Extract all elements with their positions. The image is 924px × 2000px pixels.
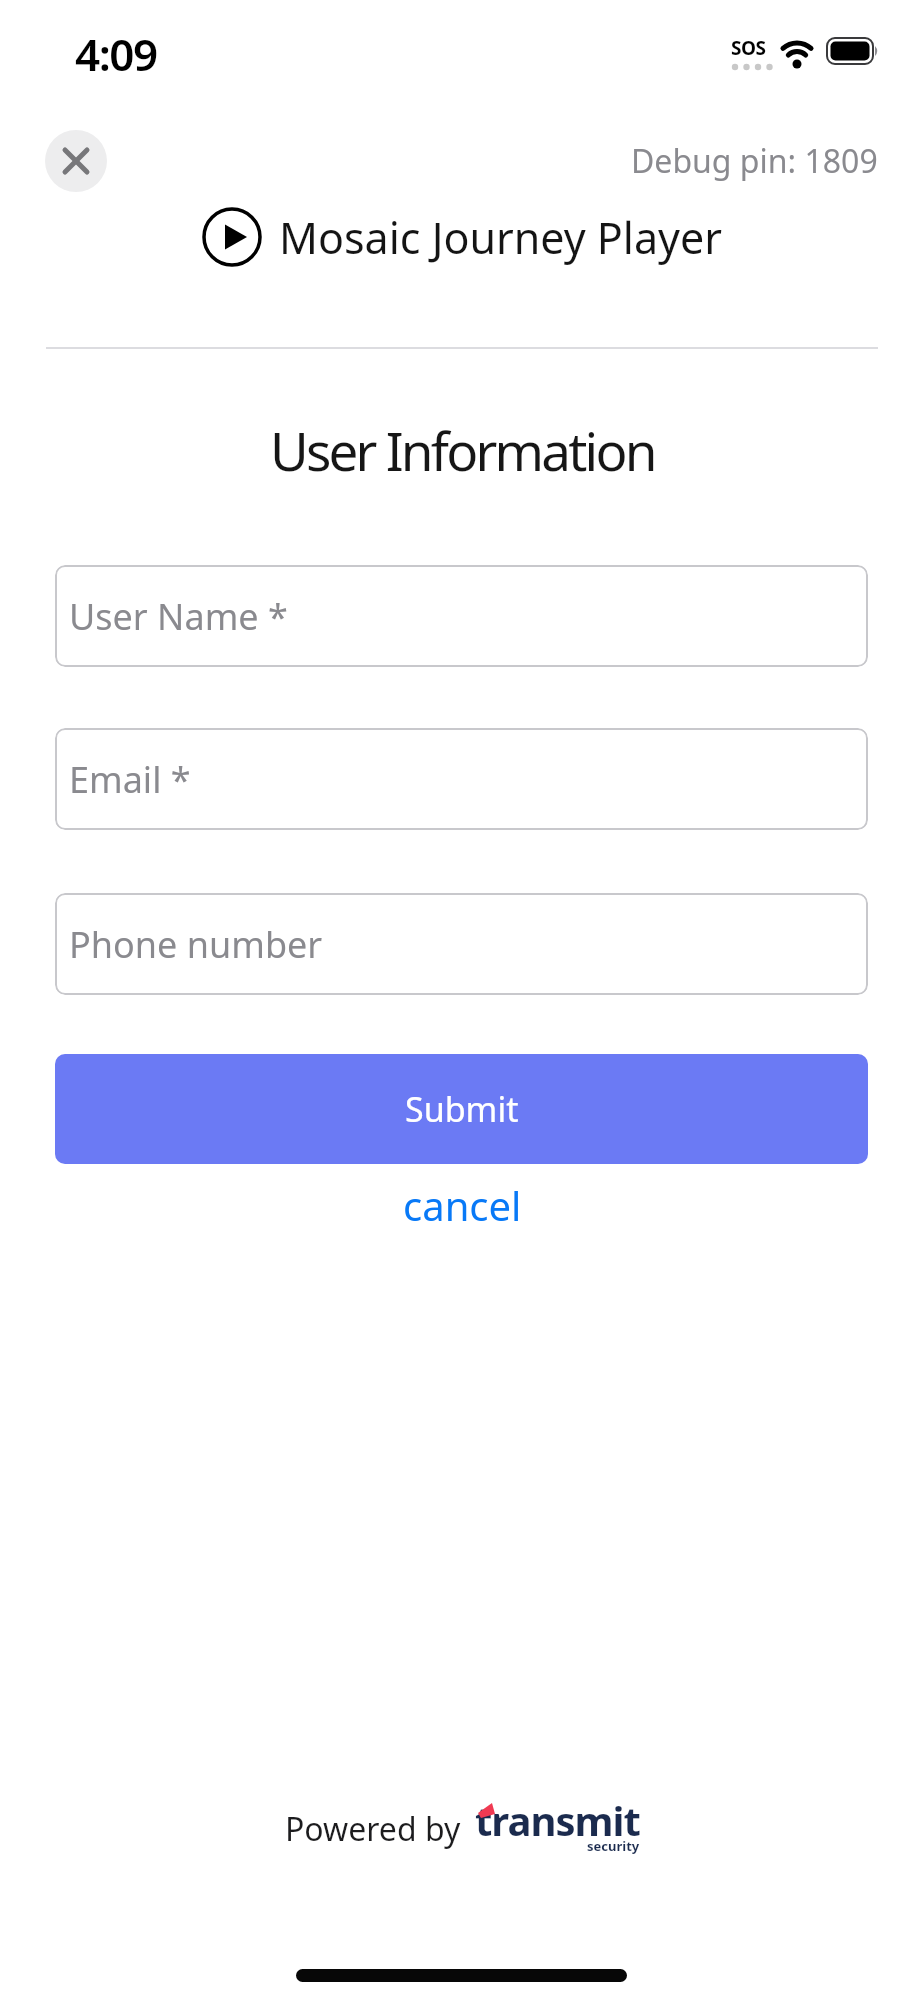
button[interactable]: User Name * (55, 565, 868, 667)
staticText: User Information (270, 414, 655, 478)
button[interactable]: Submit (55, 1054, 868, 1164)
button[interactable]: Phone number (55, 893, 868, 995)
staticText: Mosaic Journey Player (279, 208, 722, 267)
button[interactable]: cancel (403, 1178, 522, 1232)
button[interactable]: Email * (55, 728, 868, 830)
staticText: Debug pin: 1809 (631, 139, 878, 183)
staticText: cancel (403, 1178, 522, 1232)
button[interactable] (45, 130, 107, 192)
staticText: SOS (731, 35, 766, 61)
staticText: transmit (475, 1793, 640, 1847)
staticText: Phone number (69, 920, 323, 969)
staticText: security (587, 1837, 640, 1855)
staticText: Powered by (285, 1807, 461, 1851)
staticText: Submit (405, 1086, 519, 1132)
staticText: User Name * (69, 592, 288, 641)
staticText: Email * (69, 755, 191, 804)
staticText: 4:09 (75, 24, 157, 74)
